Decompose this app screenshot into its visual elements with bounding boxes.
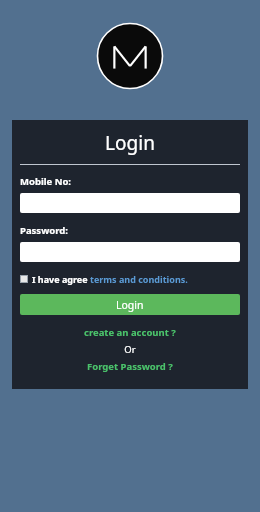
staticText: Forget Password ? bbox=[87, 360, 173, 373]
staticText: I have agree bbox=[32, 273, 90, 285]
button[interactable] bbox=[20, 242, 240, 262]
staticText: Password: bbox=[20, 224, 68, 237]
button[interactable]: I have agree bbox=[20, 273, 188, 285]
button[interactable]: Forget Password ? bbox=[20, 360, 240, 373]
button[interactable]: create an account ? bbox=[20, 326, 240, 339]
button[interactable] bbox=[20, 193, 240, 213]
button[interactable]: Login bbox=[20, 294, 240, 315]
staticText: Mobile No: bbox=[20, 175, 72, 188]
staticText: create an account ? bbox=[84, 326, 176, 339]
staticText: Login bbox=[116, 298, 144, 312]
staticText: Login bbox=[20, 130, 240, 156]
staticText: Or bbox=[20, 343, 240, 356]
staticText: terms and conditions. bbox=[90, 273, 188, 285]
other: App logo bbox=[96, 22, 164, 90]
